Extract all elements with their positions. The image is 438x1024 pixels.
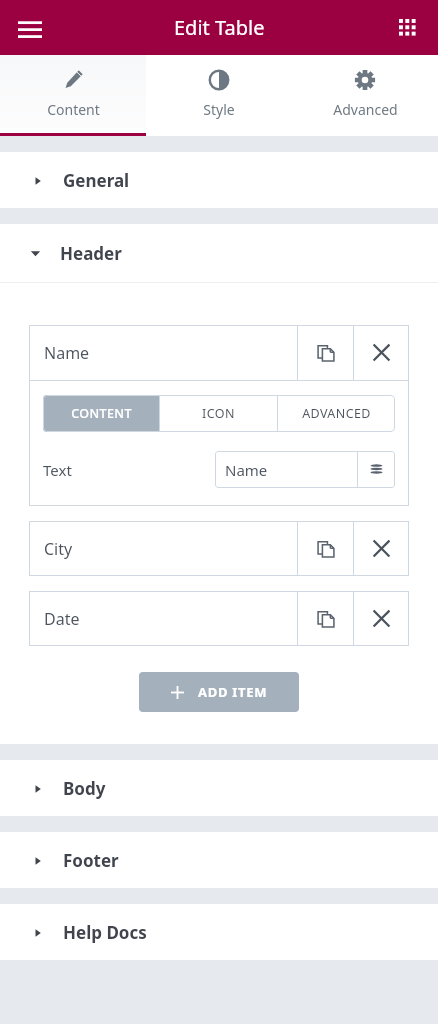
button[interactable]: Apps grid xyxy=(384,4,432,52)
staticText: ICON xyxy=(202,405,235,422)
button[interactable]: Footer xyxy=(0,832,438,888)
staticText: General xyxy=(63,169,130,192)
staticText: Help Docs xyxy=(63,921,147,944)
button[interactable]: Name xyxy=(29,325,297,380)
button[interactable]: Help Docs xyxy=(0,904,438,960)
staticText: Text xyxy=(43,460,72,480)
staticText: Style xyxy=(203,100,235,119)
button[interactable]: General xyxy=(0,152,438,208)
staticText: Body xyxy=(63,777,106,800)
button[interactable]: Header xyxy=(0,224,438,282)
button[interactable]: ADD ITEM xyxy=(139,672,299,712)
button[interactable]: Duplicate City xyxy=(298,521,353,576)
staticText: Content xyxy=(47,100,100,119)
button[interactable]: Duplicate Date xyxy=(298,591,353,646)
staticText: Edit Table xyxy=(174,14,265,41)
button[interactable]: Menu xyxy=(6,4,54,52)
button[interactable]: Content xyxy=(0,55,146,136)
staticText: Name xyxy=(44,342,90,364)
staticText: ADVANCED xyxy=(302,405,371,422)
staticText: Date xyxy=(44,608,80,630)
button[interactable]: CONTENT xyxy=(43,395,159,432)
button[interactable]: Name xyxy=(215,451,357,488)
button[interactable]: ADVANCED xyxy=(278,395,395,432)
staticText: Name xyxy=(225,460,268,480)
button[interactable]: Remove Name xyxy=(354,325,409,380)
staticText: CONTENT xyxy=(71,405,132,422)
staticText: ADD ITEM xyxy=(198,683,268,701)
button[interactable]: ICON xyxy=(160,395,277,432)
staticText: Footer xyxy=(63,849,119,872)
button[interactable]: Duplicate Name xyxy=(298,325,353,380)
button[interactable]: Advanced xyxy=(292,55,438,136)
button[interactable]: Remove Date xyxy=(354,591,409,646)
button[interactable]: Body xyxy=(0,760,438,816)
button[interactable]: Date xyxy=(29,591,297,646)
staticText: City xyxy=(44,538,73,560)
staticText: Header xyxy=(60,242,122,265)
button[interactable]: Dynamic tags xyxy=(358,451,395,488)
button[interactable]: Style xyxy=(146,55,292,136)
button[interactable]: City xyxy=(29,521,297,576)
staticText: Advanced xyxy=(333,100,398,119)
button[interactable]: Remove City xyxy=(354,521,409,576)
